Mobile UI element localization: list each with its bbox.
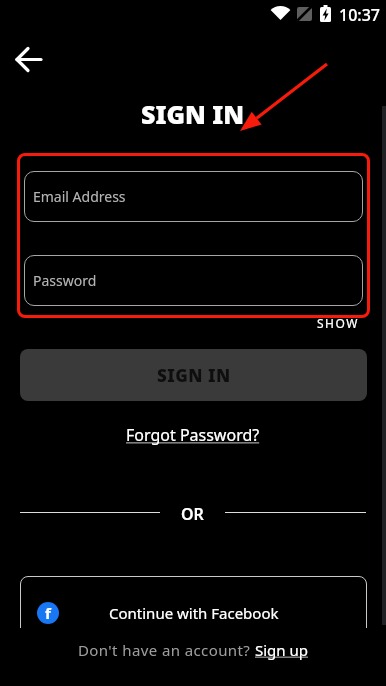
staticText: Continue with Facebook bbox=[109, 603, 279, 623]
staticText: f bbox=[45, 603, 51, 623]
button[interactable]: SHOW bbox=[317, 315, 359, 331]
staticText: OR bbox=[181, 503, 204, 522]
button[interactable]: f bbox=[20, 576, 367, 638]
button[interactable]: Forgot Password? bbox=[126, 424, 260, 446]
staticText: Don't have an account? bbox=[78, 640, 255, 660]
staticText: SIGN IN bbox=[141, 97, 245, 131]
button[interactable]: Sign up bbox=[255, 640, 308, 660]
button[interactable] bbox=[10, 40, 50, 80]
staticText: Password bbox=[33, 271, 97, 290]
staticText: SIGN IN bbox=[157, 364, 231, 387]
staticText: 10:37 bbox=[339, 4, 380, 26]
button[interactable]: Email Address bbox=[24, 171, 363, 222]
button[interactable]: Password bbox=[24, 255, 363, 306]
staticText: Email Address bbox=[33, 187, 126, 206]
button[interactable]: SIGN IN bbox=[20, 349, 367, 401]
